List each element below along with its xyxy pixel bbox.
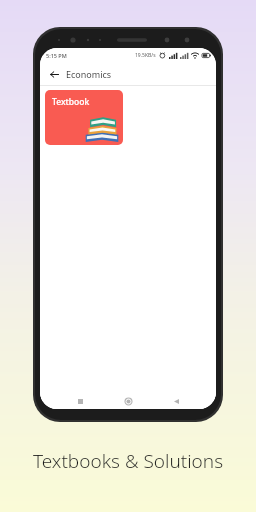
button[interactable]: Home bbox=[120, 393, 136, 409]
staticText: Textbook bbox=[52, 96, 90, 108]
staticText: 19.5KB/s bbox=[135, 52, 156, 59]
button[interactable]: Back bbox=[47, 67, 61, 81]
staticText: Textbooks & Solutions bbox=[0, 448, 256, 474]
button[interactable]: Back bbox=[168, 393, 184, 409]
staticText: 5:15 PM bbox=[46, 52, 67, 59]
button[interactable]: Recents bbox=[72, 393, 88, 409]
button[interactable]: Textbook bbox=[45, 90, 123, 145]
staticText: Economics bbox=[66, 68, 112, 80]
